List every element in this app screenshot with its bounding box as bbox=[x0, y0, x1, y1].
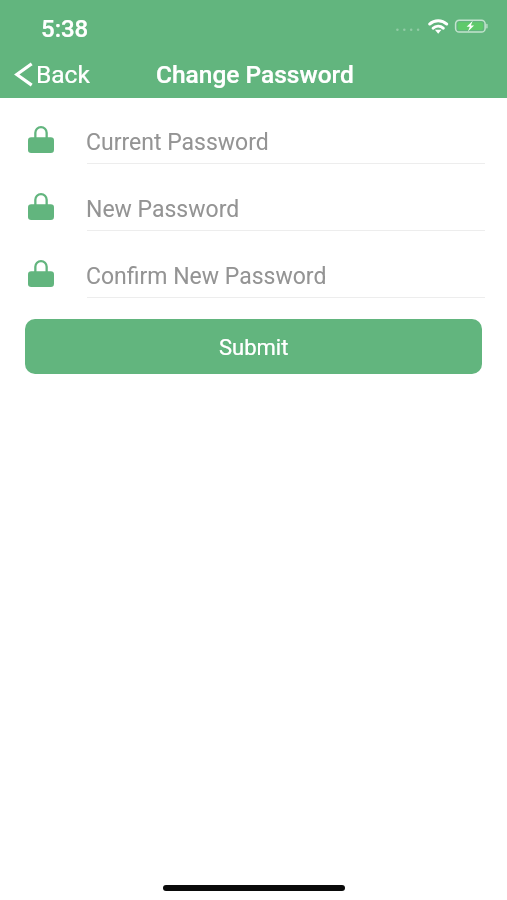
staticText: Confirm New Password bbox=[86, 263, 327, 290]
staticText: Current Password bbox=[86, 129, 269, 156]
button[interactable]: New Password bbox=[0, 165, 507, 232]
button[interactable]: Submit bbox=[25, 319, 482, 374]
staticText: Change Password bbox=[156, 60, 354, 89]
staticText: New Password bbox=[86, 196, 240, 223]
button[interactable]: Confirm New Password bbox=[0, 232, 507, 299]
staticText: 5:38 bbox=[41, 15, 89, 43]
button[interactable]: Current Password bbox=[0, 98, 507, 165]
button[interactable]: Back bbox=[12, 59, 90, 89]
staticText: Submit bbox=[219, 335, 289, 361]
staticText: Back bbox=[36, 60, 90, 89]
